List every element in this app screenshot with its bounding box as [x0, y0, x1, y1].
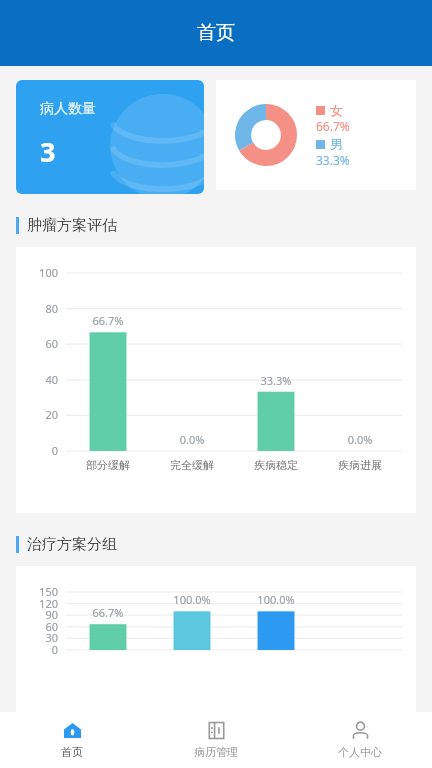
staticText: 100.0%: [150, 592, 234, 607]
staticText: 33.3%: [316, 152, 350, 168]
button[interactable]: 个人中心: [288, 712, 432, 768]
staticText: 90: [22, 607, 58, 622]
staticText: 80: [22, 301, 58, 316]
staticText: 首页: [61, 745, 83, 759]
staticText: 0: [22, 443, 58, 458]
staticText: 66.7%: [316, 118, 350, 134]
staticText: 疾病进展: [318, 458, 402, 472]
button[interactable]: 女: [216, 80, 416, 190]
button[interactable]: 首页: [0, 712, 144, 768]
staticText: 首页: [197, 21, 235, 45]
staticText: 女: [330, 102, 343, 118]
staticText: 病人数量: [40, 100, 96, 118]
staticText: 男: [330, 136, 343, 152]
other: 个人中心: [351, 721, 370, 740]
staticText: 0.0%: [150, 432, 234, 447]
staticText: 40: [22, 372, 58, 387]
staticText: 肿瘤方案评估: [27, 216, 117, 235]
staticText: 完全缓解: [150, 458, 234, 472]
staticText: 66.7%: [66, 313, 150, 328]
staticText: 治疗方案分组: [27, 535, 117, 554]
staticText: 66.7%: [66, 605, 150, 620]
staticText: 150: [22, 584, 58, 599]
button[interactable]: 病人数量: [16, 80, 204, 194]
staticText: 100: [22, 265, 58, 280]
staticText: 部分缓解: [66, 458, 150, 472]
other: 病历管理: [207, 721, 226, 740]
staticText: 病历管理: [194, 745, 238, 759]
staticText: 33.3%: [234, 373, 318, 388]
staticText: 0.0%: [318, 432, 402, 447]
button[interactable]: 病历管理: [144, 712, 288, 768]
staticText: 0: [22, 642, 58, 657]
staticText: 30: [22, 630, 58, 645]
staticText: 60: [22, 336, 58, 351]
staticText: 个人中心: [338, 745, 382, 759]
staticText: 20: [22, 407, 58, 422]
staticText: 100.0%: [234, 592, 318, 607]
staticText: 120: [22, 596, 58, 611]
staticText: 疾病稳定: [234, 458, 318, 472]
staticText: 60: [22, 619, 58, 634]
staticText: 3: [40, 133, 56, 170]
other: 首页: [63, 721, 82, 740]
